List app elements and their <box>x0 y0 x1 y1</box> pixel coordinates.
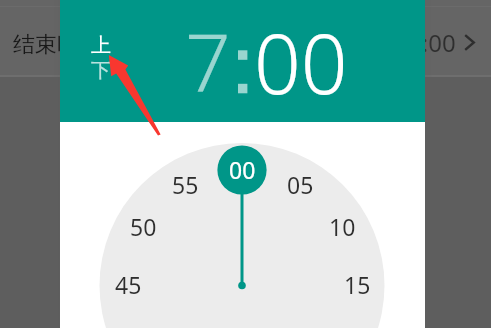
staticText: 上 <box>91 33 111 58</box>
button[interactable]: 50 <box>122 210 164 242</box>
button[interactable]: 00 <box>221 153 263 185</box>
staticText: 下 <box>91 58 111 83</box>
staticText: 7:00 <box>408 26 456 59</box>
staticText: 45 <box>115 269 142 300</box>
staticText: 15 <box>344 269 371 300</box>
staticText: 10 <box>329 211 356 242</box>
staticText: 结束时间 <box>13 31 101 59</box>
button[interactable]: 00 <box>254 6 348 118</box>
staticText: 05 <box>287 169 314 200</box>
button[interactable]: 55 <box>164 168 206 200</box>
button[interactable]: 结束时间 <box>0 0 491 75</box>
staticText: 55 <box>172 169 199 200</box>
button[interactable]: 上 <box>85 33 117 58</box>
button[interactable]: 7 <box>185 6 231 115</box>
staticText: 7 <box>185 6 231 115</box>
button[interactable]: 下 <box>85 58 117 83</box>
button[interactable]: 45 <box>107 268 149 300</box>
staticText: 00 <box>229 154 256 185</box>
button[interactable]: 10 <box>321 210 363 242</box>
button[interactable]: 15 <box>336 268 378 300</box>
other: Open <box>464 34 475 51</box>
staticText: 50 <box>130 211 157 242</box>
button[interactable]: 05 <box>279 168 321 200</box>
staticText: 00 <box>254 6 348 118</box>
